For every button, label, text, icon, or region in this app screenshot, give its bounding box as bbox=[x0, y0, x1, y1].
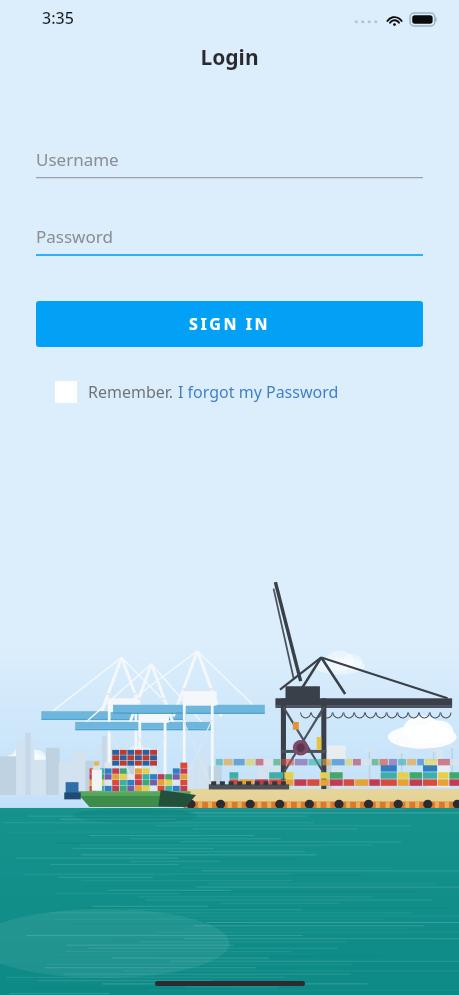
button[interactable]: Password bbox=[36, 225, 423, 257]
staticText: Login bbox=[200, 43, 259, 72]
staticText: Username bbox=[36, 148, 119, 171]
staticText: Password bbox=[36, 225, 113, 248]
button[interactable]: SIGN IN bbox=[36, 301, 423, 347]
staticText: Remember. bbox=[88, 381, 178, 403]
button[interactable]: Remember. bbox=[88, 381, 339, 403]
staticText: SIGN IN bbox=[189, 313, 271, 335]
staticText: I forgot my Password bbox=[178, 381, 339, 403]
staticText: 3:35 bbox=[42, 7, 74, 29]
button[interactable]: Username bbox=[36, 148, 423, 180]
